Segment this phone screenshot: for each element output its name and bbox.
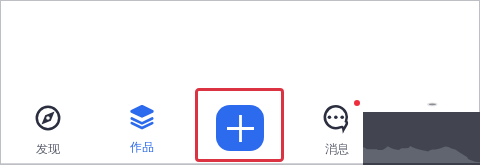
button[interactable]: 作品	[107, 100, 176, 160]
button[interactable]: Create	[216, 105, 264, 151]
staticText: 消息	[325, 141, 349, 156]
button[interactable]: 发现	[13, 100, 82, 160]
staticText: 作品	[130, 139, 154, 154]
staticText: 发现	[36, 141, 60, 156]
button[interactable]: 消息	[302, 100, 371, 160]
